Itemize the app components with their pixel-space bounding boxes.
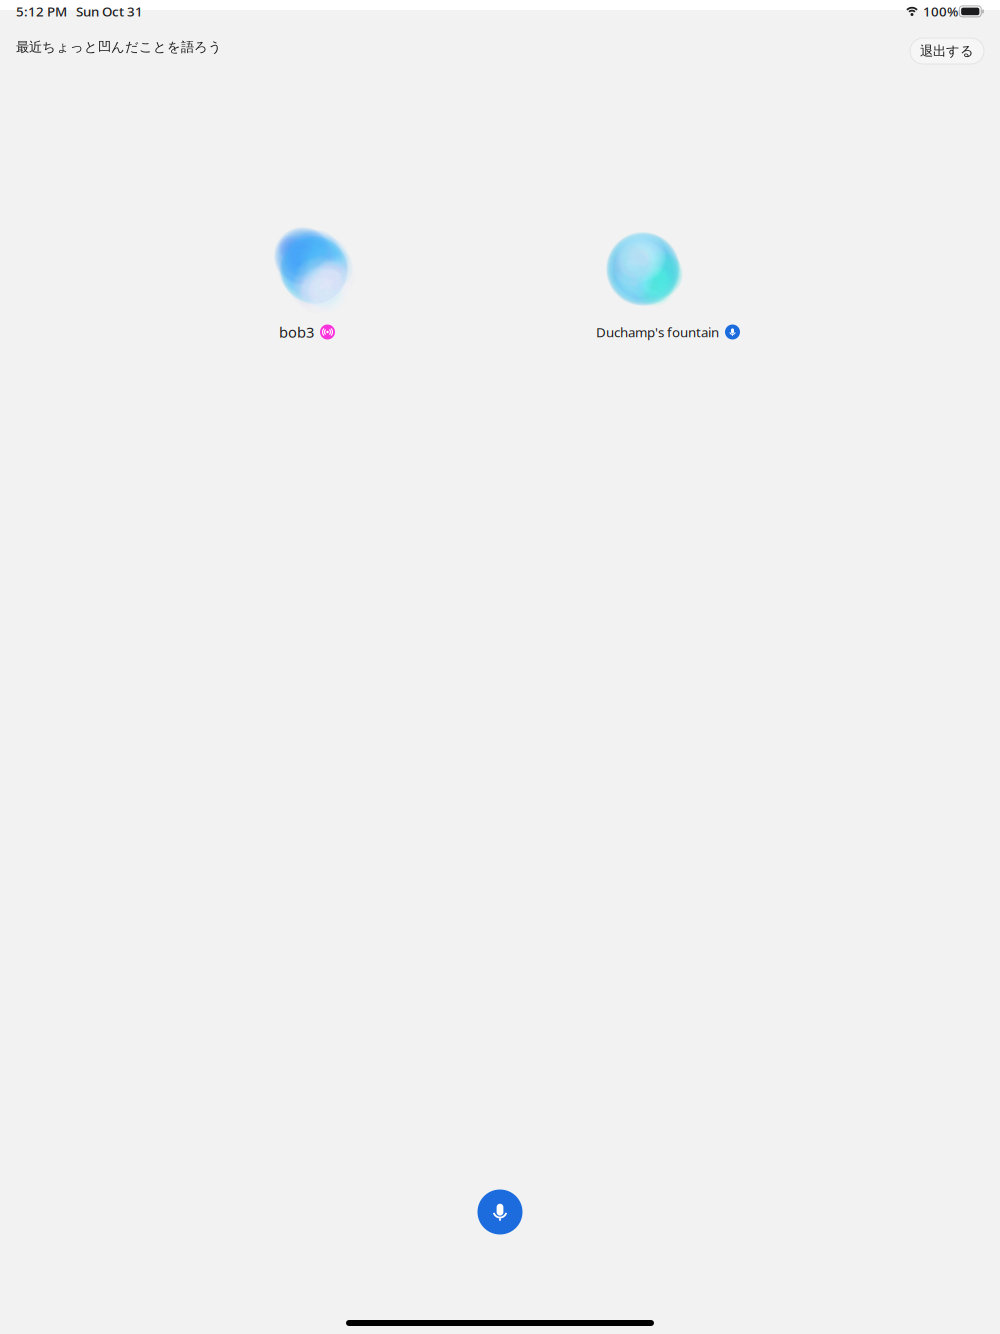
button[interactable]: Mute microphone <box>474 1186 526 1238</box>
staticText: 5:12 PM <box>16 2 67 20</box>
staticText: bob3 <box>279 322 314 342</box>
staticText: Duchamp's fountain <box>596 323 719 341</box>
staticText: Sun Oct 31 <box>76 2 143 20</box>
staticText: 退出する <box>920 43 974 59</box>
button[interactable]: 退出する <box>910 38 984 64</box>
staticText: 100% <box>923 2 958 20</box>
staticText: 最近ちょっと凹んだことを語ろう <box>16 39 222 55</box>
